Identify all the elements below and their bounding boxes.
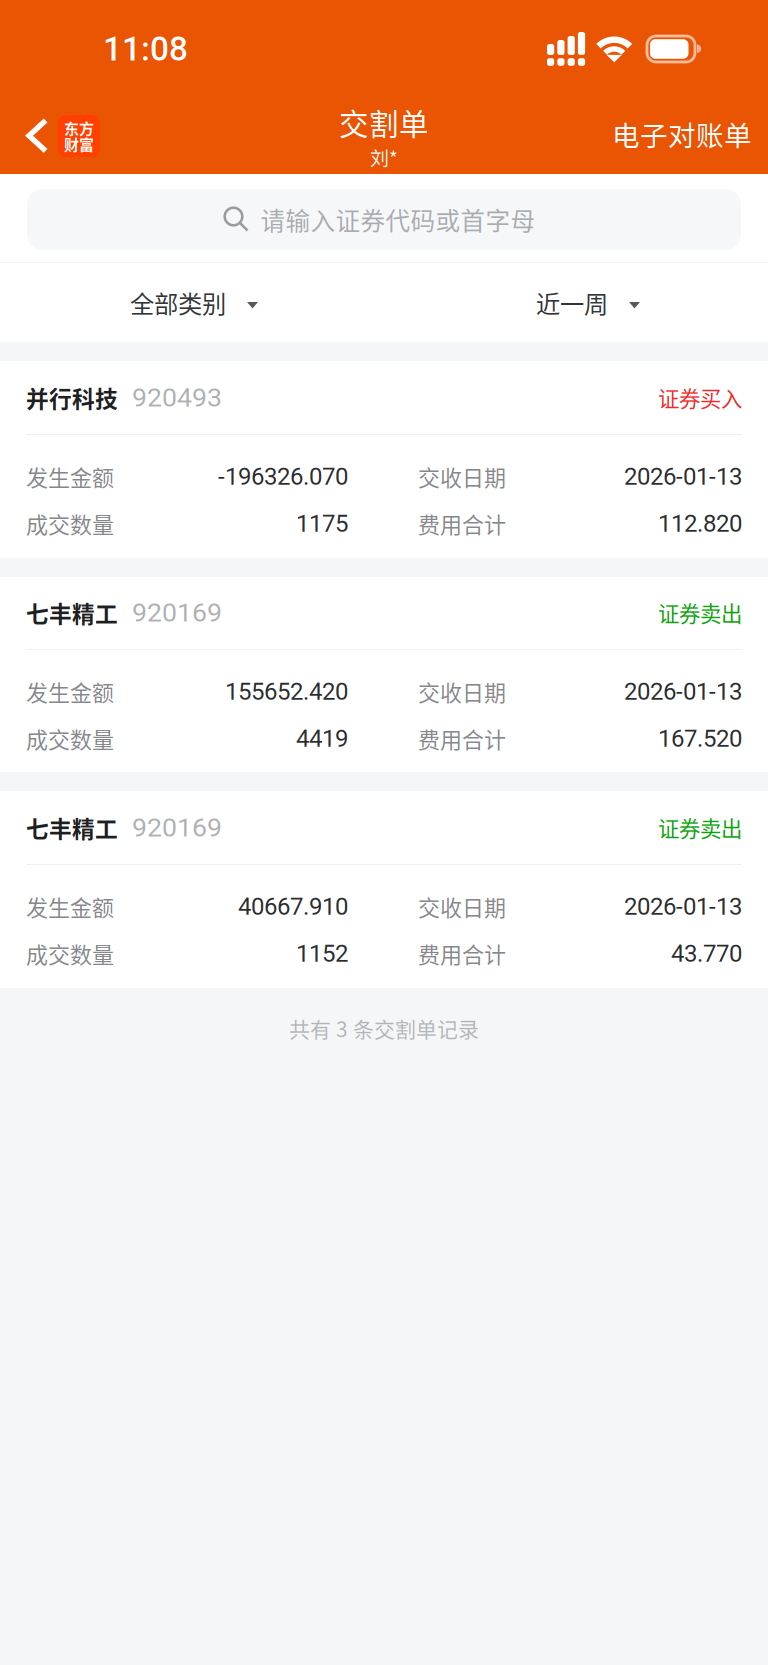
staticText: 东方 xyxy=(64,117,94,139)
staticText: 费用合计 xyxy=(418,723,506,754)
staticText: 交收日期 xyxy=(418,676,506,707)
staticText: 成交数量 xyxy=(26,723,114,754)
staticText: 证券买入 xyxy=(658,382,742,413)
staticText: 证券卖出 xyxy=(658,597,742,628)
staticText: 近一周 xyxy=(536,285,608,320)
button[interactable]: 全部类别 xyxy=(130,263,258,342)
staticText: 43.770 xyxy=(671,939,742,967)
staticText: -196326.070 xyxy=(218,462,348,490)
button[interactable]: 近一周 xyxy=(536,263,640,342)
staticText: 费用合计 xyxy=(418,938,506,969)
staticText: 刘* xyxy=(370,144,398,171)
staticText: 2026-01-13 xyxy=(624,677,742,705)
button[interactable]: 并行科技 xyxy=(0,361,768,558)
staticText: 交割单 xyxy=(339,101,429,144)
staticText: 112.820 xyxy=(658,509,742,537)
staticText: 1175 xyxy=(296,509,348,537)
button[interactable]: 七丰精工 xyxy=(0,577,768,772)
staticText: 请输入证券代码或首字母 xyxy=(260,202,535,237)
staticText: 共有 3 条交割单记录 xyxy=(289,1013,479,1043)
staticText: 167.520 xyxy=(658,724,742,752)
staticText: 2026-01-13 xyxy=(624,462,742,490)
button[interactable]: 请输入证券代码或首字母 xyxy=(27,189,741,250)
staticText: 4419 xyxy=(296,724,348,752)
staticText: 费用合计 xyxy=(418,508,506,539)
staticText: 七丰精工 xyxy=(26,811,118,844)
button[interactable]: 返回 xyxy=(0,98,110,174)
staticText: 发生金额 xyxy=(26,461,114,492)
staticText: 11:08 xyxy=(103,29,188,69)
staticText: 920169 xyxy=(132,597,222,628)
staticText: 全部类别 xyxy=(130,285,226,320)
staticText: 并行科技 xyxy=(26,381,118,414)
staticText: 920169 xyxy=(132,812,222,843)
button[interactable]: 七丰精工 xyxy=(0,791,768,988)
staticText: 交收日期 xyxy=(418,461,506,492)
staticText: 40667.910 xyxy=(238,892,348,920)
staticText: 1152 xyxy=(296,939,348,967)
button[interactable]: 电子对账单 xyxy=(596,98,768,174)
staticText: 成交数量 xyxy=(26,938,114,969)
staticText: 2026-01-13 xyxy=(624,892,742,920)
staticText: 成交数量 xyxy=(26,508,114,539)
staticText: 财富 xyxy=(64,133,94,155)
staticText: 155652.420 xyxy=(225,677,348,705)
staticText: 证券卖出 xyxy=(658,812,742,843)
staticText: 电子对账单 xyxy=(612,114,752,154)
staticText: 七丰精工 xyxy=(26,596,118,629)
staticText: 920493 xyxy=(132,382,222,413)
staticText: 交收日期 xyxy=(418,891,506,922)
staticText: 发生金额 xyxy=(26,676,114,707)
staticText: 发生金额 xyxy=(26,891,114,922)
